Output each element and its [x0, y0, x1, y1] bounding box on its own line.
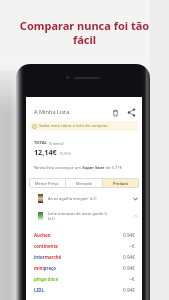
staticText: TOTAL [34, 140, 47, 146]
staticText: 15,85€ [59, 151, 71, 156]
staticText: 12,14€ [34, 147, 57, 157]
staticText: Mercado [76, 181, 93, 186]
staticText: A Minha Lista [34, 108, 70, 116]
staticText: Comparar nunca foi tão fácil [11, 18, 158, 48]
staticText: continente [34, 243, 58, 249]
button[interactable]: continente [34, 240, 135, 251]
staticText: minipreço [34, 265, 57, 271]
staticText: (5 items) [49, 141, 64, 146]
button[interactable]: Produto [103, 178, 139, 188]
staticText: --€ [129, 243, 135, 249]
button[interactable]: Menor Preço [29, 178, 65, 188]
staticText: Arroz agulha integral (x1) [48, 196, 97, 201]
button[interactable]: Mercado [66, 178, 102, 188]
button[interactable]: minipreço [34, 262, 135, 273]
staticText: LIDL [34, 287, 44, 293]
staticText: 0.94€ [123, 254, 135, 260]
staticText: (x1) [48, 216, 55, 221]
staticText: Saiba mais sobre a lista de compras [39, 123, 108, 129]
staticText: Auchan [34, 232, 51, 238]
button[interactable]: Delete list [110, 107, 121, 118]
staticText: pingo doce [34, 276, 59, 282]
button[interactable]: intermarché [34, 251, 135, 262]
staticText: intermarché [34, 254, 62, 260]
staticText: Nesta lista consegue um Super Save de 5.… [34, 165, 122, 171]
staticText: 0.94€ [123, 287, 135, 293]
button[interactable]: Saiba mais sobre a lista de compras [29, 121, 138, 131]
staticText: --€ [129, 276, 135, 282]
staticText: Menor Preço [35, 181, 59, 186]
staticText: Leite mimosa uht meio gordo lt [48, 211, 108, 216]
staticText: 0.94€ [123, 265, 135, 271]
button[interactable]: LIDL [34, 284, 135, 295]
staticText: Produto [113, 181, 129, 186]
button[interactable]: Auchan [34, 229, 135, 240]
button[interactable]: pingo doce [34, 273, 135, 284]
staticText: 0.94€ [123, 232, 135, 238]
button[interactable]: Share list [126, 107, 137, 118]
